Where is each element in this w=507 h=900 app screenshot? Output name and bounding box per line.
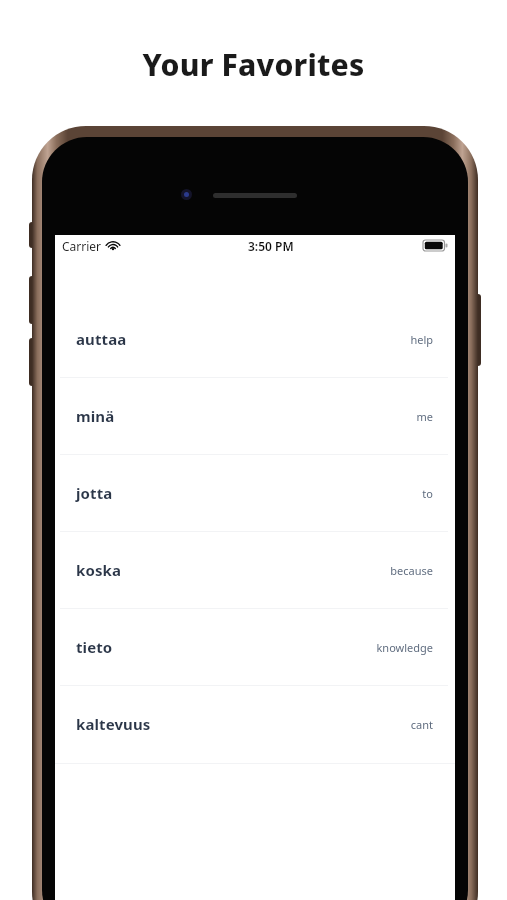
- staticText: Carrier: [62, 238, 102, 254]
- other: Wi-Fi signal: [106, 240, 120, 251]
- other: Battery full: [423, 240, 448, 251]
- staticText: cant: [410, 717, 433, 732]
- staticText: me: [416, 409, 433, 424]
- staticText: koska: [76, 560, 121, 580]
- staticText: jotta: [76, 483, 113, 503]
- staticText: because: [390, 563, 433, 578]
- staticText: Your Favorites: [0, 44, 507, 85]
- staticText: help: [410, 332, 433, 347]
- button[interactable]: tieto: [55, 609, 455, 685]
- button[interactable]: minä: [55, 378, 455, 454]
- staticText: to: [422, 486, 433, 501]
- button[interactable]: koska: [55, 532, 455, 608]
- button[interactable]: jotta: [55, 455, 455, 531]
- staticText: knowledge: [376, 640, 433, 655]
- staticText: kaltevuus: [76, 714, 151, 734]
- staticText: minä: [76, 406, 115, 426]
- button[interactable]: kaltevuus: [55, 686, 455, 762]
- staticText: auttaa: [76, 329, 127, 349]
- staticText: tieto: [76, 637, 113, 657]
- staticText: 3:50 PM: [248, 238, 294, 254]
- button[interactable]: auttaa: [55, 301, 455, 377]
